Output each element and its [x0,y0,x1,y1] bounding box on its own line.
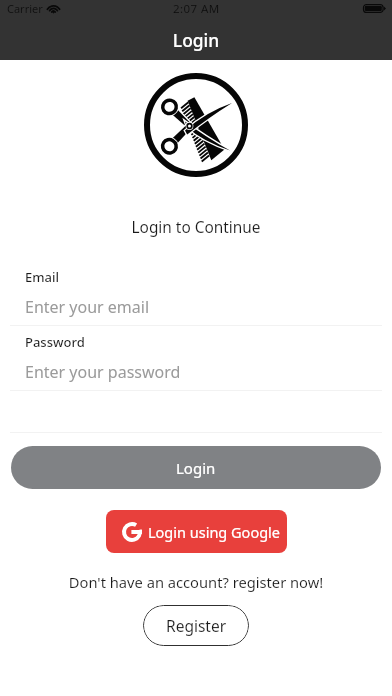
staticText: Carrier [7,1,43,16]
staticText: Enter your password [25,361,181,383]
staticText: Login using Google [148,522,280,542]
button[interactable]: Register [143,605,249,646]
staticText: 2:07 AM [173,1,220,17]
staticText: Login [176,458,216,478]
button[interactable]: Login using Google [106,510,287,553]
staticText: Enter your email [25,296,150,318]
button[interactable]: Login [11,446,381,489]
staticText: Login to Continue [0,217,392,238]
staticText: Don't have an account? register now! [0,572,392,592]
staticText: Password [25,333,85,351]
staticText: Login [0,28,392,52]
staticText: Email [25,268,60,286]
staticText: Register [166,615,227,636]
